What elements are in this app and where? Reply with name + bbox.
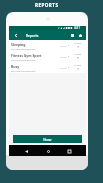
button[interactable]: Recent apps (64, 146, 74, 156)
staticText: Fitness Gym Sport (11, 53, 42, 58)
staticText: Busy (11, 64, 20, 69)
button[interactable]: Navigate up (11, 30, 20, 40)
button[interactable]: Busy (9, 62, 86, 73)
staticText: Reports (26, 33, 39, 37)
staticText: 4.00Pkj (74, 53, 82, 56)
button[interactable]: Save report (68, 30, 76, 40)
staticText: Sent Milk stufa/Rep/box (11, 48, 36, 51)
button[interactable]: Home (43, 146, 53, 156)
staticText: 4.00Pkj (74, 42, 82, 45)
button[interactable]: Home (76, 30, 84, 40)
staticText: Sent Milk stufa/Rep/box (11, 59, 36, 62)
staticText: Sent Milk stufa/Rep/box (11, 70, 36, 73)
button[interactable]: Show (13, 135, 82, 143)
staticText: 4:31 (74, 26, 80, 30)
button[interactable]: Back (21, 146, 31, 156)
staticText: Sleeping (11, 42, 26, 47)
button[interactable]: Sleeping (9, 40, 86, 51)
button[interactable]: Fitness Gym Sport (9, 51, 86, 62)
staticText: REPORTS (35, 2, 59, 8)
staticText: 4.00Pkj (74, 64, 82, 67)
staticText: Show (43, 137, 52, 141)
